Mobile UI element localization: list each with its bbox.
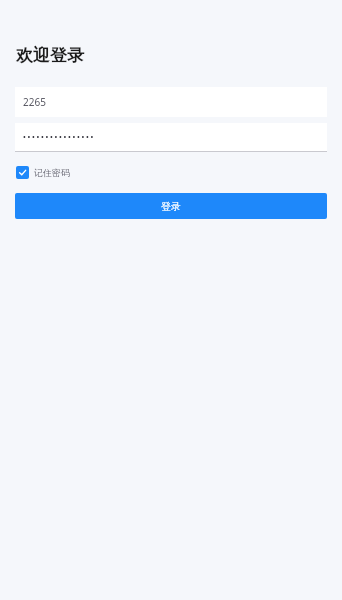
staticText: 记住密码 <box>34 167 70 178</box>
staticText: 欢迎登录 <box>16 45 84 66</box>
staticText: 2265 <box>23 95 46 109</box>
button[interactable]: 2265 <box>15 87 327 117</box>
button[interactable] <box>15 123 327 152</box>
button[interactable]: 记住密码 <box>16 166 70 179</box>
button[interactable]: 登录 <box>15 193 327 219</box>
staticText: 登录 <box>161 200 181 213</box>
